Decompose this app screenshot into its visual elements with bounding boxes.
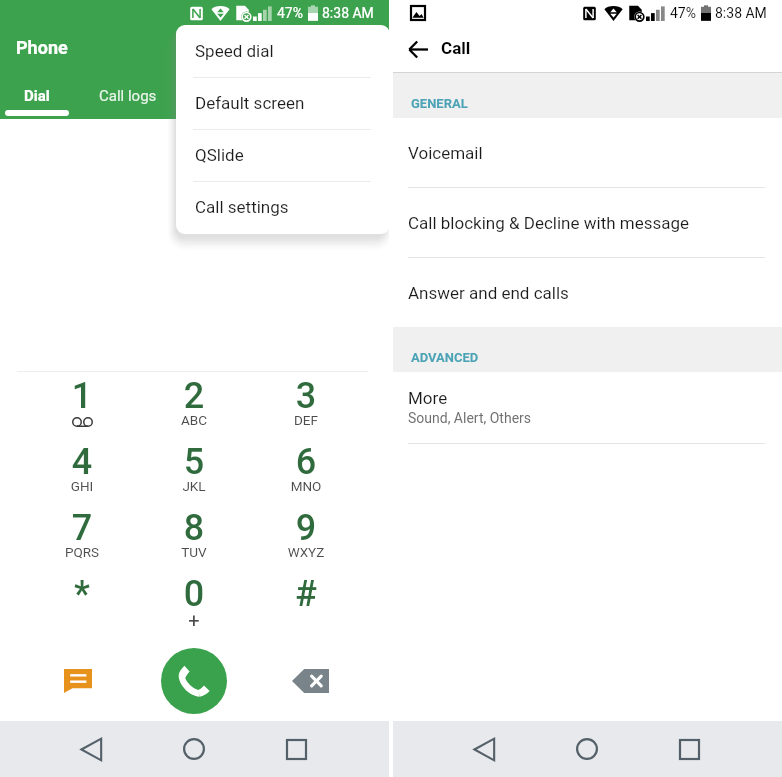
staticText: 5	[147, 441, 241, 483]
button[interactable]: 3	[259, 375, 353, 437]
button[interactable]: Call	[161, 648, 227, 714]
button[interactable]: Messages	[53, 656, 103, 706]
button[interactable]: Back	[400, 33, 436, 65]
button[interactable]: Call logs	[78, 80, 178, 119]
staticText: 9	[259, 507, 353, 549]
button[interactable]: 5	[147, 441, 241, 503]
staticText: WXYZ	[259, 544, 353, 560]
button[interactable]: Default screen	[176, 77, 390, 129]
button[interactable]: #	[259, 573, 353, 635]
staticText: DEF	[259, 412, 353, 428]
staticText: 8	[147, 507, 241, 549]
staticText: 0	[147, 573, 241, 615]
button[interactable]: 0	[147, 573, 241, 635]
button[interactable]: 4	[35, 441, 129, 503]
button[interactable]: 9	[259, 507, 353, 569]
button[interactable]: Backspace	[285, 656, 335, 706]
button[interactable]: Home	[559, 727, 615, 771]
button[interactable]: 6	[259, 441, 353, 503]
staticText: MNO	[259, 478, 353, 494]
button[interactable]: 7	[35, 507, 129, 569]
button[interactable]: Dial	[5, 80, 69, 119]
staticText: More	[408, 388, 448, 408]
staticText: QSlide	[195, 145, 244, 165]
button[interactable]: 1	[35, 375, 129, 437]
staticText: Phone	[16, 37, 68, 58]
staticText: 8:38 AM	[715, 5, 767, 21]
staticText: GENERAL	[411, 96, 468, 111]
staticText: Call settings	[195, 197, 289, 217]
staticText: #	[259, 573, 353, 615]
button[interactable]: Home	[166, 727, 222, 771]
button[interactable]: QSlide	[176, 129, 390, 181]
staticText: Speed dial	[195, 41, 274, 61]
button[interactable]: Back	[63, 727, 119, 771]
staticText: JKL	[147, 478, 241, 494]
staticText: Voicemail	[408, 143, 483, 163]
staticText: 47%	[277, 5, 303, 21]
staticText: Answer and end calls	[408, 283, 569, 303]
staticText: GHI	[35, 478, 129, 494]
button[interactable]: Back	[456, 727, 512, 771]
button[interactable]: 2	[147, 375, 241, 437]
button[interactable]: 8	[147, 507, 241, 569]
staticText: 8:38 AM	[322, 5, 374, 21]
staticText: Call logs	[99, 87, 157, 105]
staticText: Call	[441, 38, 471, 58]
button[interactable]: Recents	[661, 727, 717, 771]
staticText: +	[147, 608, 241, 631]
staticText: Call blocking & Decline with message	[408, 213, 690, 233]
staticText: ADVANCED	[411, 350, 479, 365]
staticText: Sound, Alert, Others	[408, 410, 532, 426]
staticText: 2	[147, 375, 241, 417]
staticText: Default screen	[195, 93, 305, 113]
staticText: 7	[35, 507, 129, 549]
staticText: 6	[259, 441, 353, 483]
staticText: Dial	[24, 87, 50, 105]
staticText: 4	[35, 441, 129, 483]
button[interactable]: Call settings	[176, 181, 390, 233]
staticText: 3	[259, 375, 353, 417]
staticText: 1	[35, 375, 129, 417]
button[interactable]: Speed dial	[176, 25, 390, 77]
button[interactable]: Voicemail	[393, 118, 782, 188]
staticText: *	[35, 573, 129, 615]
button[interactable]: Recents	[268, 727, 324, 771]
staticText: PQRS	[35, 544, 129, 560]
staticText: 47%	[670, 5, 696, 21]
button[interactable]: More	[393, 372, 782, 442]
button[interactable]: Answer and end calls	[393, 258, 782, 328]
staticText: TUV	[147, 544, 241, 560]
button[interactable]: *	[35, 573, 129, 635]
staticText: ABC	[147, 412, 241, 428]
button[interactable]: Call blocking & Decline with message	[393, 188, 782, 258]
